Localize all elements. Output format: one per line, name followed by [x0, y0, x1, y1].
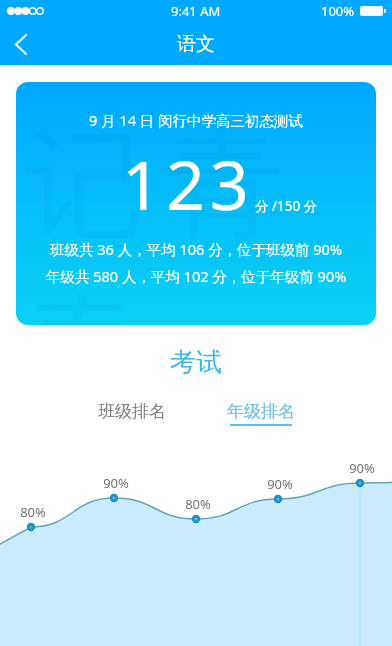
staticText: 90% — [342, 459, 382, 477]
button[interactable]: 班级排名 — [92, 396, 172, 427]
staticText: 班级共 36 人，平均 106 分，位于班级前 90% — [50, 239, 342, 259]
staticText: 90% — [96, 474, 136, 492]
staticText: 年级共 580 人，平均 102 分，位于年级前 90% — [46, 266, 347, 286]
staticText: 语文 — [177, 32, 215, 56]
button[interactable]: 记青春 — [16, 82, 376, 325]
staticText: 班级排名 — [98, 401, 166, 422]
staticText: 年级排名 — [227, 401, 295, 422]
staticText: 80% — [13, 503, 53, 521]
button[interactable]: 年级排名 — [221, 396, 301, 431]
staticText: 100% — [321, 2, 355, 20]
staticText: 分 /150 分 — [255, 197, 318, 215]
staticText: 考试 — [0, 346, 392, 379]
staticText: 90% — [260, 475, 300, 493]
staticText: 记青春 — [24, 110, 376, 325]
button[interactable]: Back — [0, 23, 42, 65]
staticText: 123 — [122, 137, 254, 230]
staticText: 80% — [178, 495, 218, 513]
staticText: 9:41 AM — [171, 2, 221, 20]
staticText: 9 月 14 日 闵行中学高三初态测试 — [89, 110, 303, 130]
